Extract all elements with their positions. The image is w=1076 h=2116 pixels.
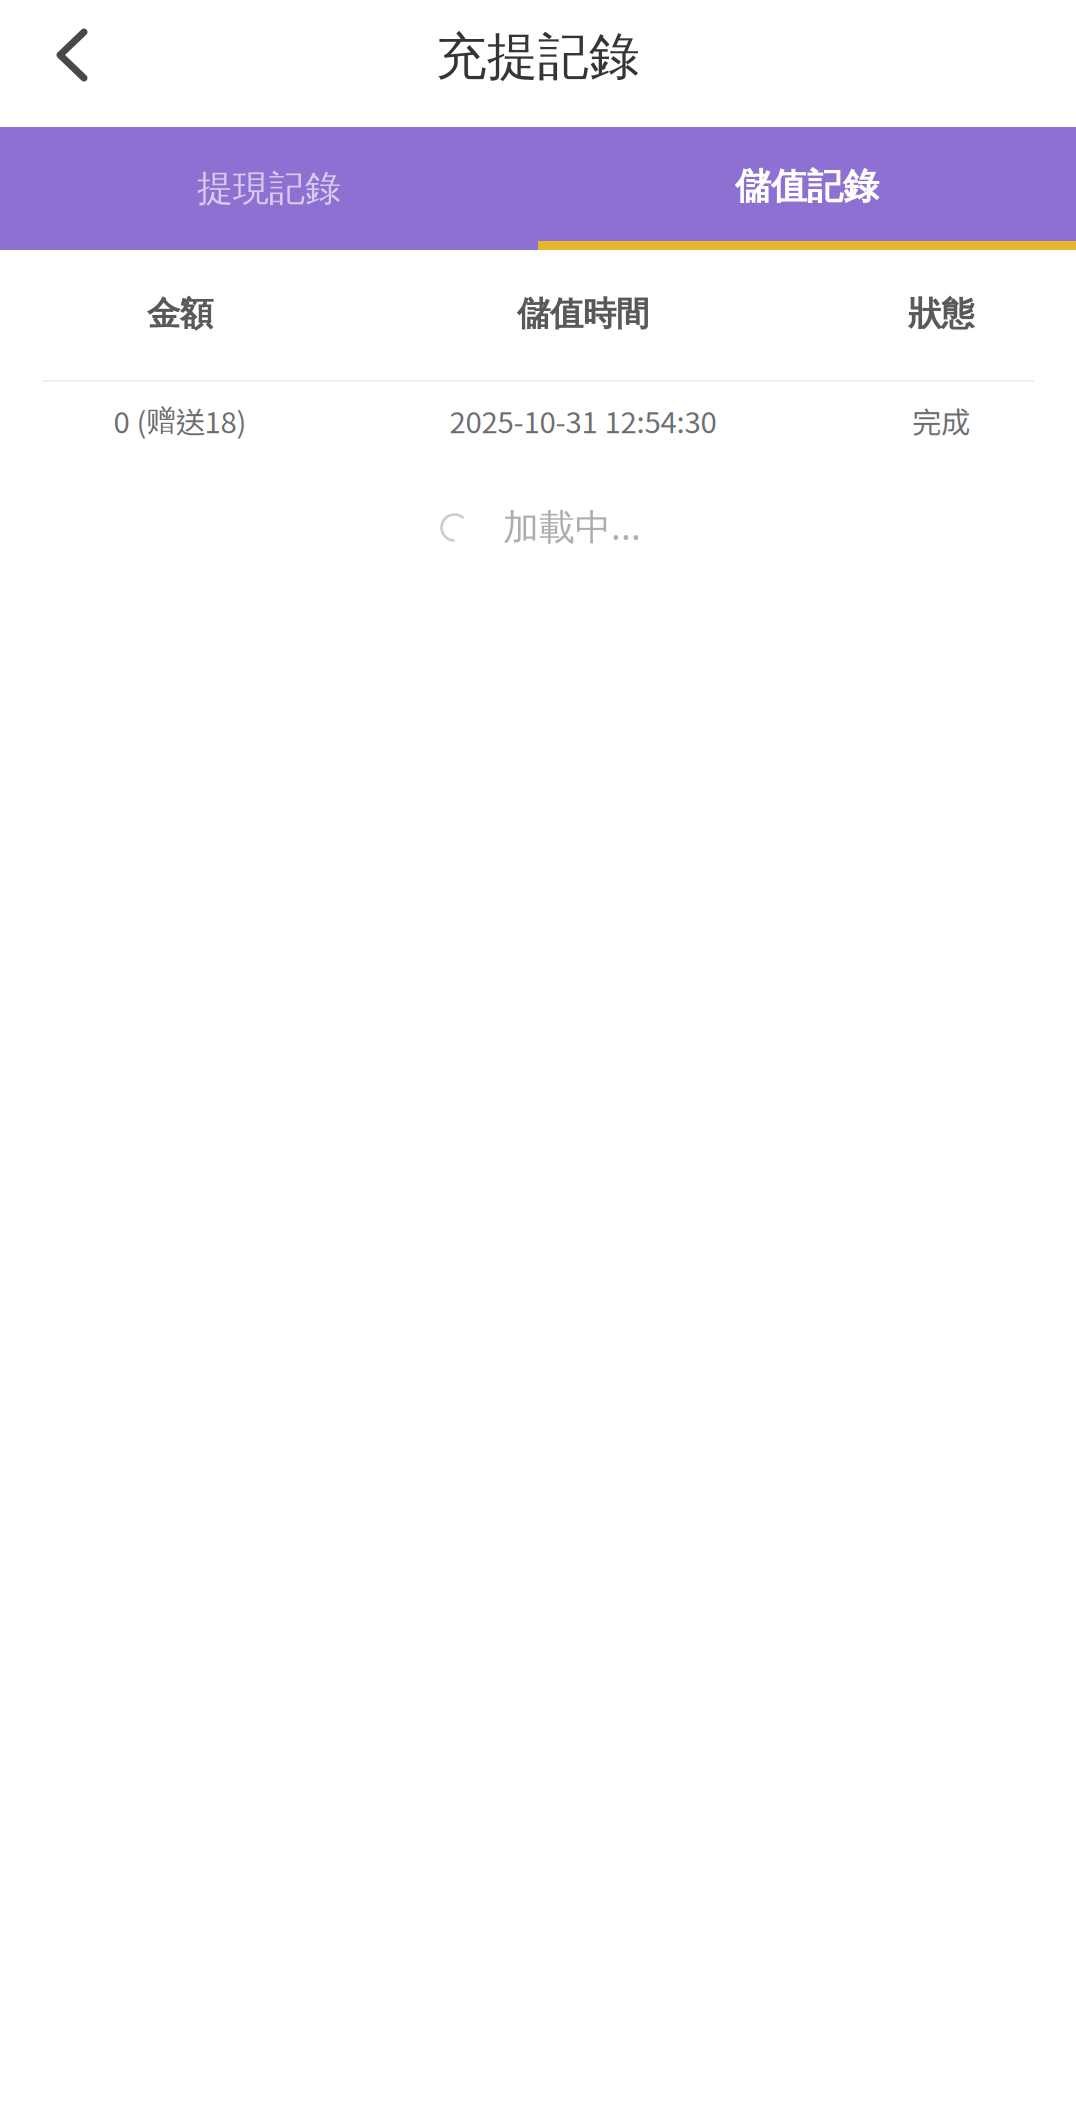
staticText: 金額 bbox=[147, 293, 213, 335]
staticText: 0 (赠送18) bbox=[113, 399, 246, 442]
staticText: 充提記錄 bbox=[436, 25, 640, 89]
staticText: 2025-10-31 12:54:30 bbox=[449, 399, 716, 442]
staticText: 狀態 bbox=[908, 293, 974, 335]
staticText: 儲值時間 bbox=[517, 293, 649, 335]
staticText: 提現記錄 bbox=[197, 166, 341, 211]
staticText: 儲值記錄 bbox=[735, 164, 879, 209]
staticText: 加載中... bbox=[503, 501, 641, 550]
button[interactable]: Back bbox=[0, 0, 143, 110]
button[interactable]: 提現記錄 bbox=[0, 127, 538, 250]
staticText: 完成 bbox=[912, 399, 970, 442]
button[interactable]: 儲值記錄 bbox=[538, 127, 1076, 250]
